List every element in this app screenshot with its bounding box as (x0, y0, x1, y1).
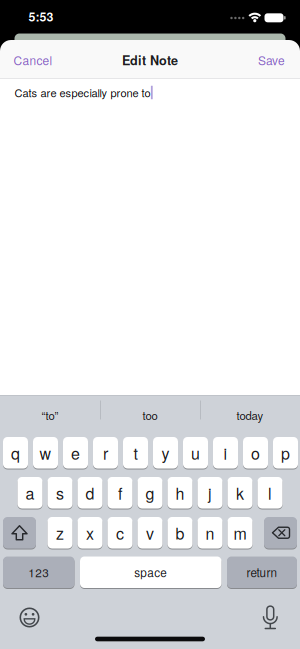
staticText: x (86, 521, 94, 544)
staticText: w (39, 441, 51, 464)
staticText: c (116, 521, 124, 544)
staticText: b (175, 521, 184, 544)
staticText: 123 (28, 564, 49, 581)
button[interactable]: h (167, 477, 192, 508)
button[interactable]: too (101, 396, 199, 434)
button[interactable]: Cancel (13, 51, 52, 69)
staticText: return (246, 564, 277, 581)
button[interactable]: c (107, 517, 132, 548)
button[interactable]: m (227, 517, 252, 548)
staticText: Cancel (13, 51, 52, 69)
button[interactable] (14, 602, 44, 632)
staticText: r (103, 441, 108, 464)
button[interactable]: f (107, 477, 132, 508)
staticText: e (71, 441, 80, 464)
button[interactable]: b (167, 517, 192, 548)
button[interactable]: a (17, 477, 42, 508)
button[interactable]: k (227, 477, 252, 508)
button[interactable]: Save (258, 51, 285, 69)
staticText: y (161, 441, 169, 464)
staticText: p (281, 441, 290, 464)
button[interactable] (264, 517, 297, 548)
staticText: a (25, 481, 34, 504)
staticText: d (85, 481, 94, 504)
staticText: v (146, 521, 154, 544)
staticText: “to” (41, 407, 58, 423)
staticText: t (133, 441, 137, 464)
button[interactable]: n (197, 517, 222, 548)
staticText: h (175, 481, 184, 504)
staticText: z (56, 521, 64, 544)
button[interactable]: “to” (1, 396, 99, 434)
button[interactable]: v (137, 517, 162, 548)
button[interactable]: z (47, 517, 72, 548)
button[interactable]: g (137, 477, 162, 508)
staticText: l (268, 481, 272, 504)
button[interactable]: j (197, 477, 222, 508)
button[interactable]: r (93, 437, 118, 468)
button[interactable]: y (153, 437, 178, 468)
button[interactable]: return (227, 556, 297, 588)
staticText: s (56, 481, 64, 504)
staticText: q (11, 441, 20, 464)
staticText: g (145, 481, 154, 504)
staticText: j (208, 481, 212, 504)
button[interactable]: o (243, 437, 268, 468)
button[interactable]: t (123, 437, 148, 468)
staticText: o (251, 441, 260, 464)
button[interactable]: e (63, 437, 88, 468)
staticText: Cats are especially prone to (14, 85, 150, 100)
button[interactable] (255, 602, 285, 634)
button[interactable]: u (183, 437, 208, 468)
staticText: today (236, 407, 263, 423)
staticText: Edit Note (122, 51, 178, 69)
button[interactable]: i (213, 437, 238, 468)
button[interactable]: l (257, 477, 282, 508)
button[interactable]: 123 (3, 556, 74, 588)
button[interactable]: space (80, 556, 221, 588)
button[interactable] (3, 517, 36, 548)
staticText: i (223, 441, 227, 464)
button[interactable]: x (77, 517, 102, 548)
staticText: n (205, 521, 214, 544)
button[interactable]: d (77, 477, 102, 508)
staticText: m (233, 521, 246, 544)
button[interactable]: today (201, 396, 299, 434)
button[interactable]: s (47, 477, 72, 508)
staticText: too (142, 407, 157, 423)
staticText: u (191, 441, 200, 464)
staticText: k (236, 481, 244, 504)
staticText: space (134, 564, 167, 581)
button[interactable]: w (33, 437, 58, 468)
staticText: Save (258, 51, 285, 69)
staticText: 5:53 (28, 8, 53, 25)
button[interactable]: q (3, 437, 28, 468)
button[interactable]: p (273, 437, 298, 468)
staticText: f (118, 481, 122, 504)
